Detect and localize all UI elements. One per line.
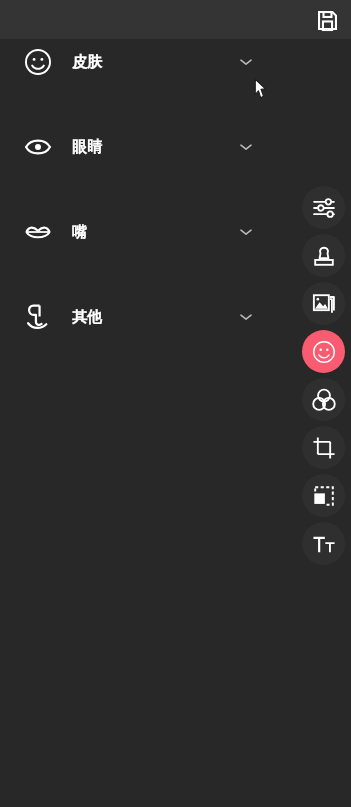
- button[interactable]: Photos: [302, 282, 345, 325]
- button[interactable]: Beauty: [302, 330, 345, 373]
- button[interactable]: Text: [302, 522, 345, 565]
- button[interactable]: Cutout: [302, 474, 345, 517]
- staticText: 眼睛: [72, 138, 102, 157]
- staticText: 其他: [72, 308, 102, 327]
- button[interactable]: Crop: [302, 426, 345, 469]
- button[interactable]: 嘴: [0, 209, 351, 294]
- button[interactable]: 其他: [0, 294, 351, 379]
- button[interactable]: 眼睛: [0, 124, 351, 209]
- staticText: 皮肤: [72, 53, 102, 72]
- button[interactable]: Stamp: [302, 234, 345, 277]
- button[interactable]: Color: [302, 378, 345, 421]
- button[interactable]: Adjust: [302, 186, 345, 229]
- button[interactable]: 皮肤: [0, 39, 351, 124]
- button[interactable]: Save: [308, 1, 346, 39]
- staticText: 嘴: [72, 223, 87, 242]
